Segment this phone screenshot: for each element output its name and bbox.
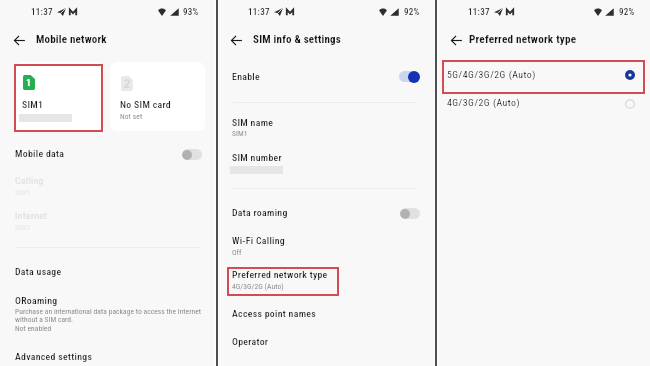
button[interactable] [219,303,434,325]
staticText: Enable [232,71,260,82]
button[interactable] [182,149,202,160]
staticText: Not set [120,112,143,121]
staticText: Mobile network [36,33,107,46]
button[interactable] [219,115,434,143]
staticText: 11:37 [31,7,53,18]
staticText: Internet [15,210,48,221]
button[interactable] [219,233,434,259]
staticText: SIM1 [15,223,31,232]
button[interactable] [219,268,434,295]
staticText: 11:37 [248,7,270,18]
staticText: Not enabled [15,324,52,333]
staticText: SIM1 [15,188,31,197]
staticText: Data usage [15,266,62,277]
staticText: Mobile data [15,148,65,159]
staticText: 11:37 [468,7,490,18]
staticText: ORoaming [15,295,58,306]
button[interactable]: Back [446,30,467,51]
button[interactable] [438,61,650,93]
button[interactable] [219,66,434,88]
staticText: Off [232,248,242,257]
staticText: 92% [619,7,635,18]
button[interactable] [0,144,214,166]
staticText: Preferred network type [232,269,328,280]
staticText: 4G/3G/2G (Auto) [447,97,521,108]
staticText: Operator [232,336,269,347]
staticText: SIM name [232,117,274,128]
staticText: SIM1 [232,129,248,138]
staticText: Purchase an international data package t… [15,307,202,316]
staticText: Advanced settings [15,351,93,362]
button[interactable] [219,150,434,178]
button[interactable] [0,290,214,338]
staticText: Wi-Fi Calling [232,235,286,246]
staticText: SIM info & settings [253,33,342,46]
button[interactable] [0,262,214,284]
staticText: No SIM card [120,99,171,110]
staticText: 92% [404,7,420,18]
button[interactable]: Back [9,30,30,51]
button[interactable] [219,203,434,225]
button[interactable] [110,62,205,131]
staticText: SIM number [232,152,282,163]
staticText: without a SIM card. [15,315,74,324]
button[interactable] [400,208,420,219]
staticText: 4G/3G/2G (Auto) [232,282,284,291]
button[interactable] [219,331,434,353]
button[interactable] [399,70,420,83]
button[interactable] [15,62,102,131]
staticText: Access point names [232,308,316,319]
staticText: SIM1 [22,99,44,110]
button[interactable] [0,346,214,366]
staticText: 5G/4G/3G/2G (Auto) [447,69,536,80]
staticText: 93% [183,7,199,18]
staticText: Preferred network type [469,33,577,46]
button[interactable] [438,94,650,116]
staticText: Data roaming [232,207,288,218]
staticText: Calling [15,175,44,186]
button[interactable]: Back [226,30,247,51]
